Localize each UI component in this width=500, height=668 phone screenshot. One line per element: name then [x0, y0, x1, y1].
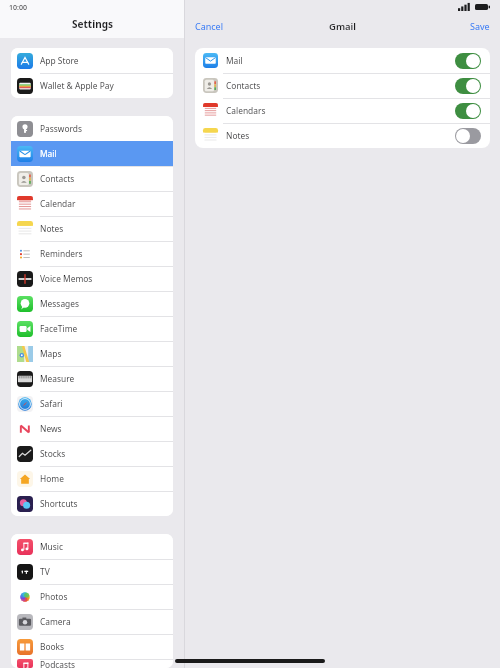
staticText: Contacts [226, 80, 261, 91]
staticText: Maps [40, 348, 62, 359]
staticText: Reminders [40, 248, 83, 259]
button[interactable]: On [455, 103, 481, 119]
button[interactable]: Messages [11, 291, 173, 316]
button[interactable]: Calendars [195, 98, 490, 123]
staticText: Voice Memos [40, 273, 93, 284]
staticText: Passwords [40, 123, 82, 134]
button[interactable]: Contacts [11, 166, 173, 191]
staticText: Settings [72, 17, 113, 31]
button[interactable]: On [455, 53, 481, 69]
button[interactable]: Save [460, 16, 500, 36]
button[interactable]: Off [455, 128, 481, 144]
button[interactable]: Photos [11, 584, 173, 609]
staticText: Books [40, 641, 65, 652]
staticText: 10:00 [9, 3, 27, 13]
button[interactable]: Cancel [185, 16, 234, 36]
button[interactable]: Mail [11, 141, 173, 166]
staticText: App Store [40, 55, 79, 66]
button[interactable]: Maps [11, 341, 173, 366]
staticText: TV [40, 566, 50, 577]
staticText: FaceTime [40, 323, 78, 334]
button[interactable]: Books [11, 634, 173, 659]
button[interactable]: Voice Memos [11, 266, 173, 291]
button[interactable]: Notes [11, 216, 173, 241]
button[interactable]: On [455, 78, 481, 94]
staticText: Music [40, 541, 64, 552]
button[interactable]: Measure [11, 366, 173, 391]
staticText: Home [40, 473, 64, 484]
staticText: Camera [40, 616, 71, 627]
staticText: Safari [40, 398, 63, 409]
staticText: Photos [40, 591, 68, 602]
button[interactable]: Camera [11, 609, 173, 634]
staticText: Measure [40, 373, 75, 384]
button[interactable]: Calendar [11, 191, 173, 216]
staticText: Save [470, 20, 490, 32]
button[interactable]: Stocks [11, 441, 173, 466]
button[interactable]: Passwords [11, 116, 173, 141]
staticText: Notes [226, 130, 250, 141]
button[interactable]: News [11, 416, 173, 441]
button[interactable]: Wallet & Apple Pay [11, 73, 173, 98]
staticText: Podcasts [40, 659, 76, 668]
button[interactable]: Mail [195, 48, 490, 73]
staticText: Calendar [40, 198, 76, 209]
staticText: Messages [40, 298, 79, 309]
button[interactable]: Safari [11, 391, 173, 416]
staticText: Contacts [40, 173, 75, 184]
staticText: Cancel [195, 20, 224, 32]
button[interactable]: Music [11, 534, 173, 559]
staticText: News [40, 423, 62, 434]
staticText: Gmail [329, 20, 356, 33]
button[interactable]: FaceTime [11, 316, 173, 341]
staticText: Notes [40, 223, 64, 234]
button[interactable]: Reminders [11, 241, 173, 266]
staticText: Mail [40, 148, 57, 159]
staticText: Stocks [40, 448, 66, 459]
button[interactable]: App Store [11, 48, 173, 73]
button[interactable]: Notes [195, 123, 490, 148]
staticText: Mail [226, 55, 243, 66]
staticText: Calendars [226, 105, 266, 116]
button[interactable]: Home [11, 466, 173, 491]
button[interactable]: Contacts [195, 73, 490, 98]
button[interactable]: Shortcuts [11, 491, 173, 516]
button[interactable]: Podcasts [11, 659, 173, 668]
staticText: Shortcuts [40, 498, 78, 509]
button[interactable]: TV [11, 559, 173, 584]
staticText: Wallet & Apple Pay [40, 80, 114, 91]
